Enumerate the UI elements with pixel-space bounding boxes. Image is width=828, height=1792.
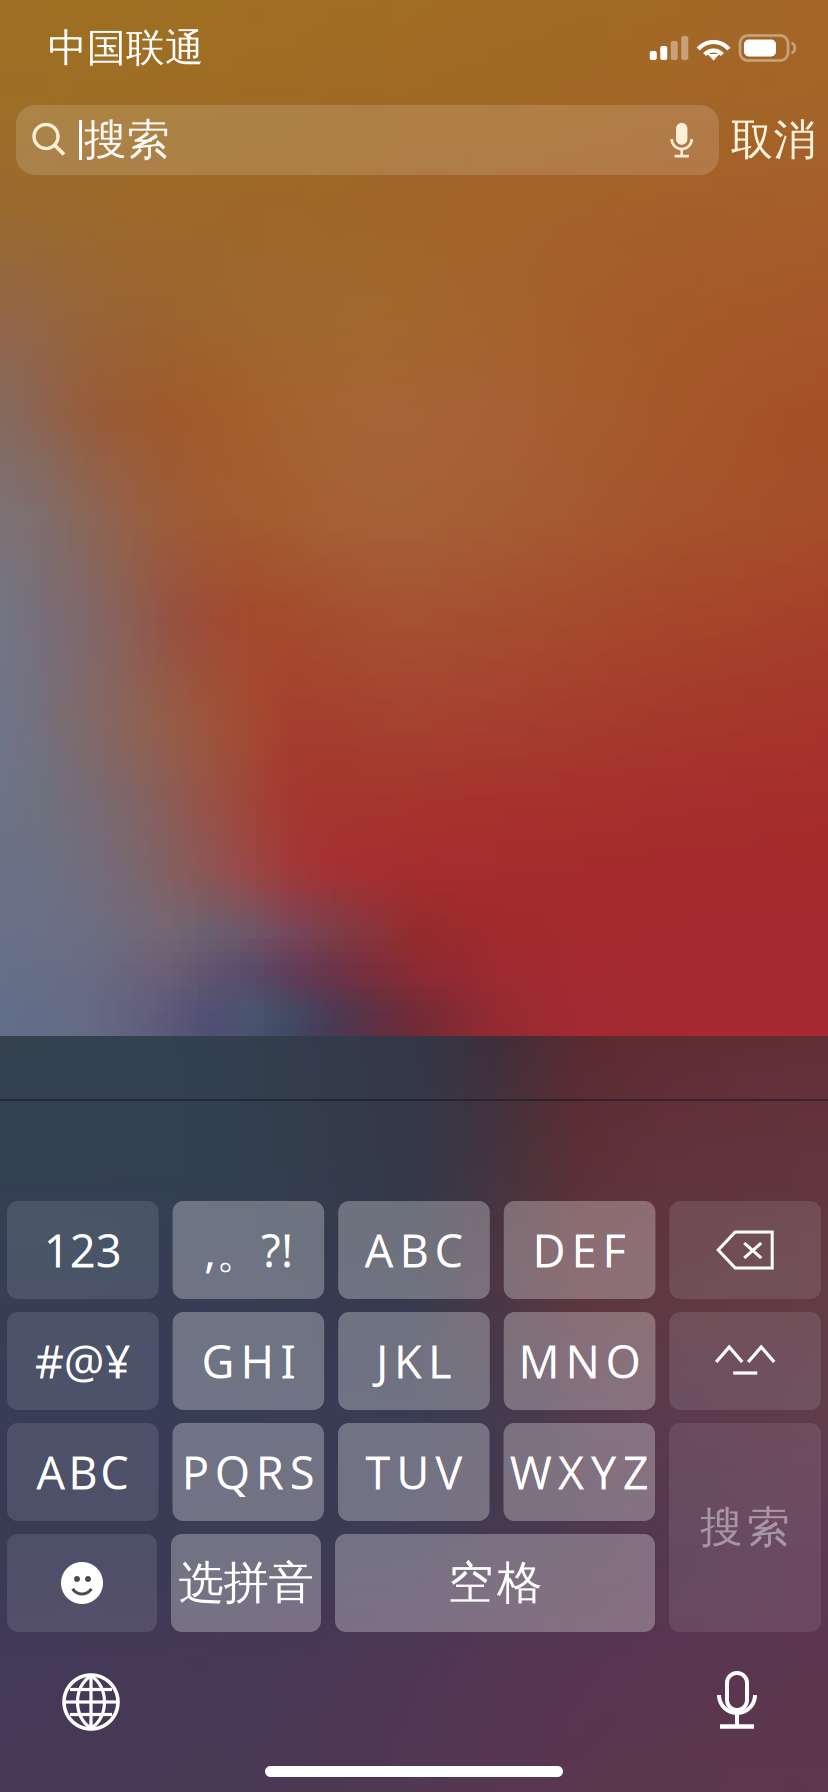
button[interactable]: 123 — [7, 1201, 159, 1299]
staticText: JKL — [376, 1331, 452, 1391]
button[interactable]: GHI — [173, 1312, 324, 1410]
staticText: ABC — [36, 1442, 129, 1502]
button[interactable]: Emoji — [7, 1534, 157, 1632]
staticText: 搜索 — [84, 114, 170, 166]
button[interactable]: WXYZ — [503, 1423, 655, 1521]
staticText: #@¥ — [35, 1331, 131, 1391]
staticText: DEF — [533, 1220, 627, 1280]
staticText: PQRS — [182, 1442, 315, 1502]
button[interactable]: Shift — [669, 1312, 821, 1410]
button[interactable]: 空格 — [335, 1534, 655, 1632]
button[interactable]: ABC — [338, 1201, 490, 1299]
button[interactable]: 搜索 — [669, 1423, 821, 1632]
button[interactable]: TUV — [338, 1423, 489, 1521]
staticText: ABC — [364, 1220, 463, 1280]
staticText: 中国联通 — [48, 24, 204, 72]
staticText: 空格 — [448, 1555, 542, 1611]
button[interactable]: 搜索 — [16, 105, 719, 175]
button[interactable]: #@¥ — [7, 1312, 159, 1410]
staticText: 选拼音 — [178, 1555, 313, 1611]
button[interactable]: PQRS — [172, 1423, 324, 1521]
button[interactable]: JKL — [338, 1312, 490, 1410]
staticText: TUV — [365, 1442, 462, 1502]
button[interactable]: DEF — [504, 1201, 655, 1299]
button[interactable]: MNO — [504, 1312, 655, 1410]
button[interactable]: ABC — [7, 1423, 158, 1521]
staticText: GHI — [201, 1331, 295, 1391]
staticText: WXYZ — [510, 1442, 649, 1502]
button[interactable]: Next keyboard — [0, 1616, 148, 1744]
button[interactable]: Dictation — [688, 1616, 828, 1744]
button[interactable]: 选拼音 — [171, 1534, 321, 1632]
button[interactable]: Delete — [669, 1201, 821, 1299]
staticText: 123 — [44, 1220, 122, 1280]
staticText: 取消 — [730, 114, 816, 166]
button[interactable]: 取消 — [719, 105, 828, 175]
staticText: 搜索 — [700, 1501, 790, 1554]
staticText: ,。?! — [204, 1220, 293, 1280]
button[interactable]: ,。?! — [173, 1201, 324, 1299]
staticText: MNO — [519, 1331, 641, 1391]
